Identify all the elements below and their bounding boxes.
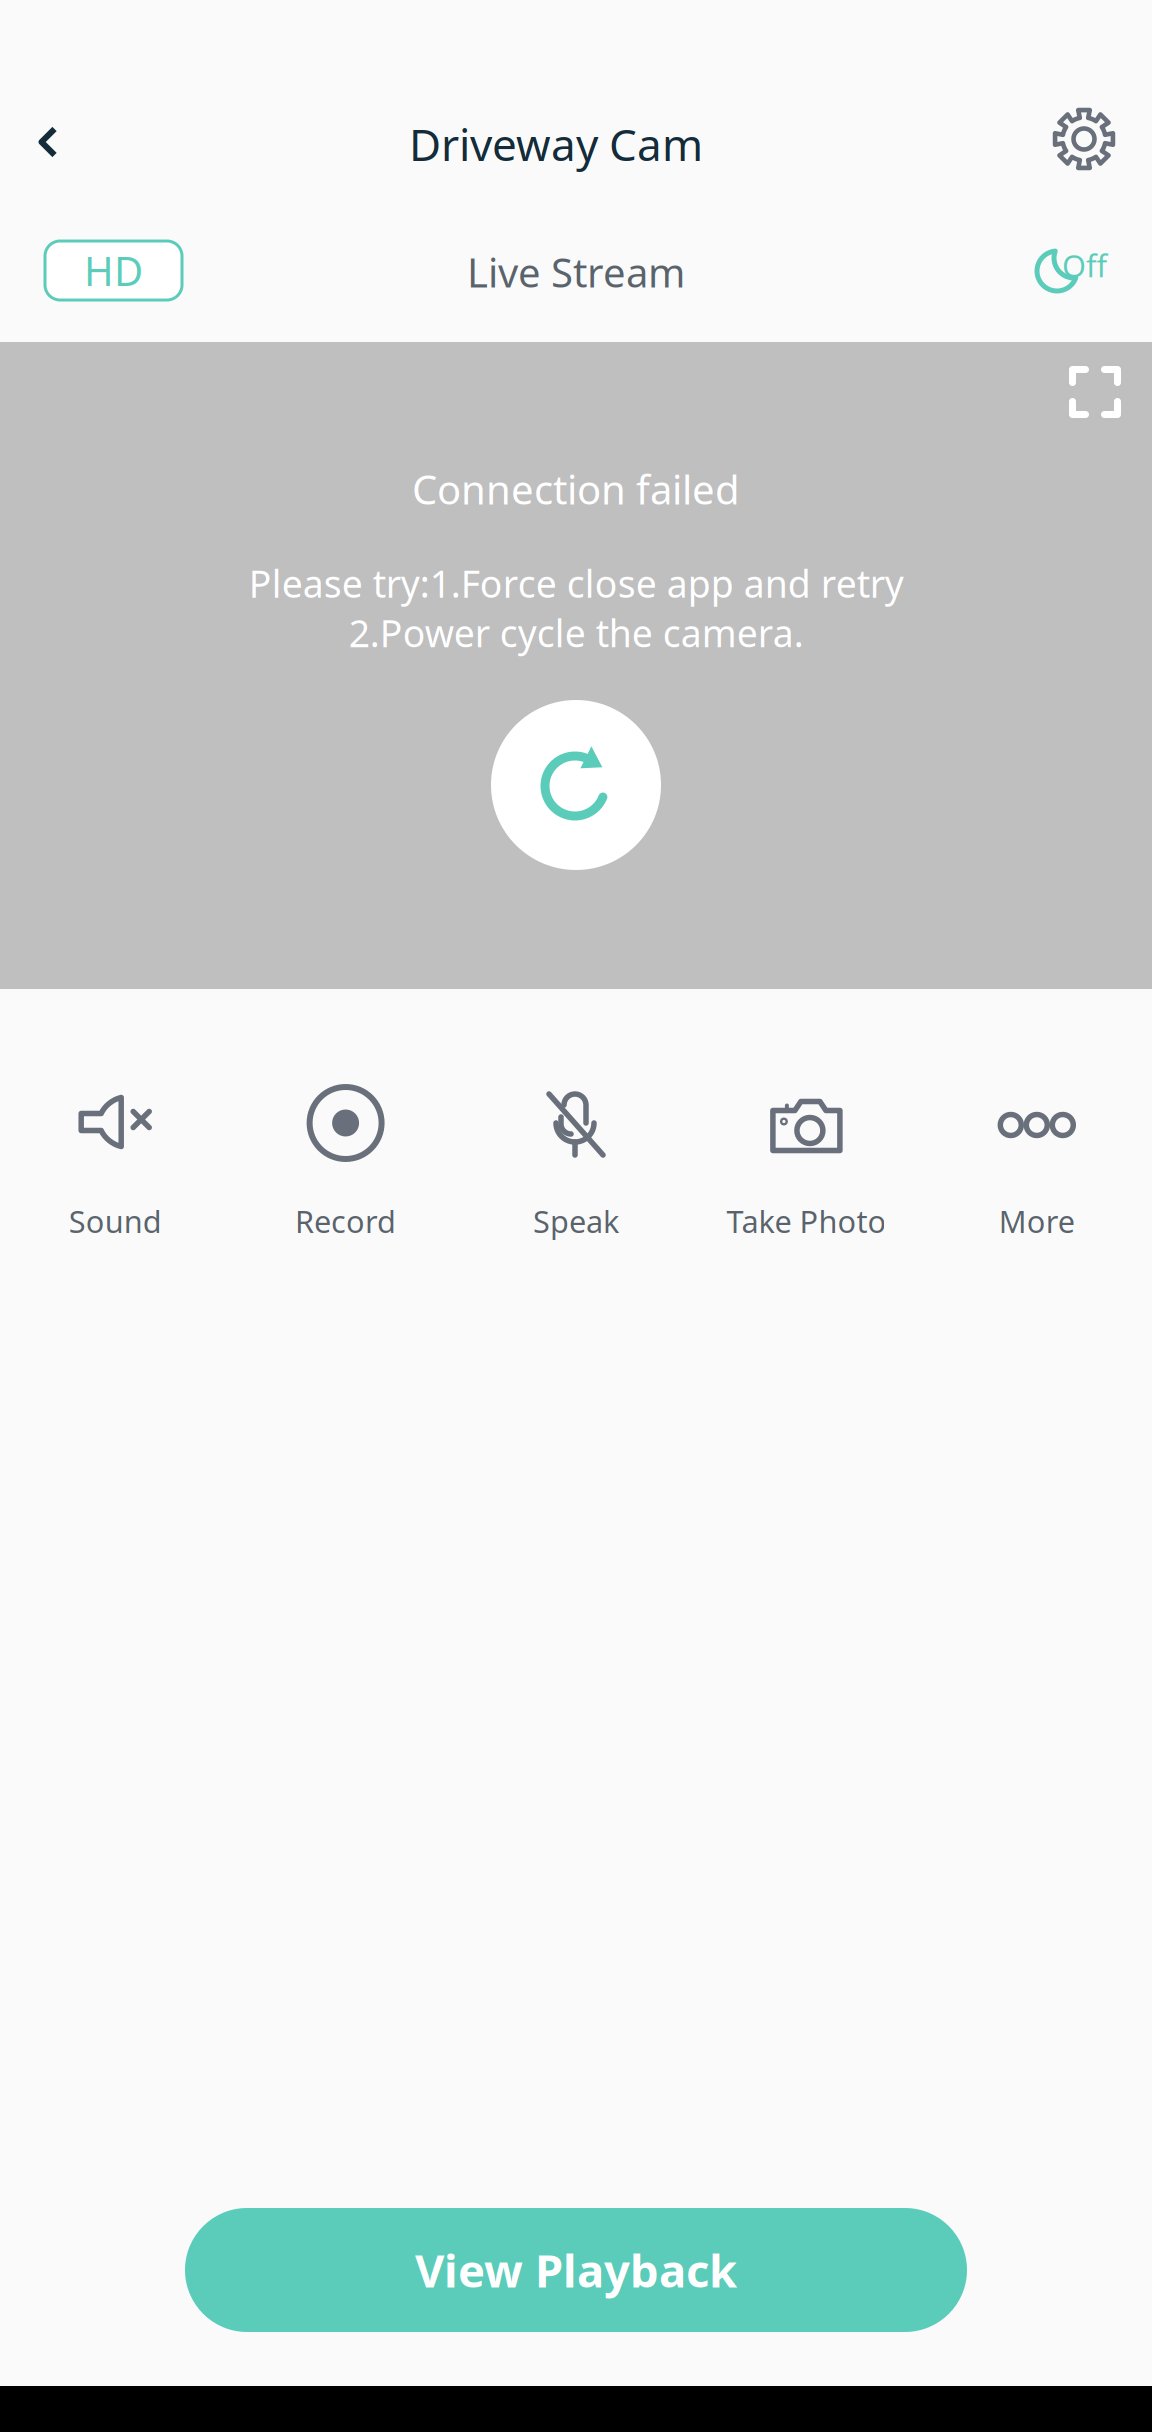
staticText: Live Stream (467, 245, 685, 298)
staticText: Record (295, 1201, 396, 1241)
button[interactable]: Speak (461, 1094, 691, 1238)
button[interactable]: Retry (491, 700, 661, 870)
staticText: Sound (69, 1201, 162, 1241)
staticText: Driveway Cam (409, 115, 703, 173)
button[interactable]: View Playback (185, 2208, 967, 2332)
staticText: Off (1062, 245, 1107, 286)
button[interactable]: Night vision off (1026, 242, 1126, 298)
button[interactable]: Settings (1052, 107, 1116, 171)
staticText: HD (84, 244, 143, 297)
staticText: Speak (533, 1201, 619, 1241)
button[interactable]: Full screen (1069, 366, 1121, 418)
staticText: View Playback (415, 2240, 737, 2300)
button[interactable]: Back (38, 126, 57, 158)
staticText: More (999, 1201, 1075, 1241)
button[interactable]: Record (230, 1094, 461, 1238)
staticText: Take Photo (726, 1201, 886, 1241)
button[interactable]: Take Photo (691, 1094, 922, 1238)
staticText: Please try:1.Force close app and retry 2… (248, 558, 903, 658)
button[interactable]: HD (45, 241, 182, 300)
button[interactable]: Sound (0, 1094, 230, 1238)
staticText: Connection failed (412, 462, 740, 515)
button[interactable]: More (922, 1094, 1152, 1238)
